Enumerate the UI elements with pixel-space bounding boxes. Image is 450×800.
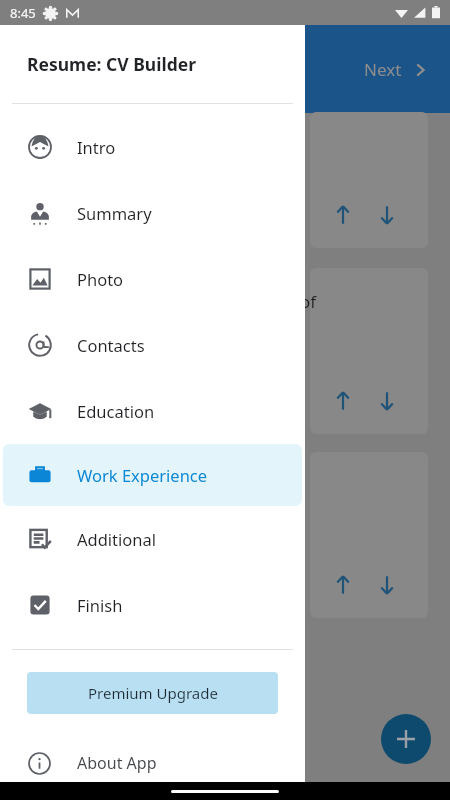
button[interactable]: Summary <box>3 180 302 246</box>
staticText: Additional <box>77 528 157 550</box>
button[interactable]: Intro <box>3 114 302 180</box>
staticText: of <box>300 290 317 313</box>
button[interactable]: Contacts <box>3 312 302 378</box>
button[interactable]: About App <box>0 740 305 786</box>
button[interactable]: Work Experience <box>3 444 302 506</box>
staticText: 8:45 <box>10 4 36 22</box>
button[interactable]: Premium Upgrade <box>27 672 278 714</box>
staticText: Finish <box>77 594 123 616</box>
staticText: Premium Upgrade <box>88 683 218 703</box>
staticText: Next <box>364 58 402 81</box>
staticText: Contacts <box>77 334 145 356</box>
staticText: Intro <box>77 136 116 158</box>
staticText: Resume: CV Builder <box>27 52 197 76</box>
button[interactable]: Add <box>381 714 431 764</box>
staticText: About App <box>77 752 157 774</box>
button[interactable]: Finish <box>3 572 302 638</box>
staticText: Photo <box>77 268 124 290</box>
staticText: Education <box>77 400 155 422</box>
button[interactable]: Next <box>356 52 438 87</box>
staticText: Summary <box>77 202 152 224</box>
staticText: Work Experience <box>77 464 208 486</box>
button[interactable]: Additional <box>3 506 302 572</box>
button[interactable]: Education <box>3 378 302 444</box>
button[interactable]: Photo <box>3 246 302 312</box>
